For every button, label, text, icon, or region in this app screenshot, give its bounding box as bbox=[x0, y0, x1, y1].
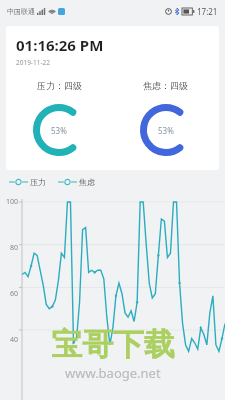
staticText: 2019-11-22 bbox=[16, 58, 50, 67]
staticText: 17:21 bbox=[197, 6, 218, 17]
staticText: 中国联通 bbox=[7, 7, 35, 16]
button[interactable]: 焦虑：四级 bbox=[112, 80, 219, 156]
staticText: 40 bbox=[10, 335, 19, 345]
staticText: 焦虑：四级 bbox=[143, 80, 188, 91]
staticText: 01:16:26 PM bbox=[16, 35, 104, 55]
staticText: 压力 bbox=[30, 177, 46, 187]
button[interactable]: 压力 bbox=[9, 177, 46, 187]
staticText: 53% bbox=[158, 125, 174, 136]
button[interactable]: 焦虑 bbox=[58, 177, 95, 187]
button[interactable]: 压力：四级 bbox=[6, 80, 112, 156]
staticText: 80 bbox=[10, 243, 19, 253]
button[interactable]: 01:16:26 PM bbox=[6, 26, 219, 170]
staticText: 53% bbox=[51, 125, 67, 136]
staticText: 60 bbox=[10, 289, 19, 299]
staticText: 焦虑 bbox=[79, 177, 95, 187]
staticText: 宝哥下载 bbox=[51, 325, 175, 364]
staticText: www.baoge.net bbox=[65, 364, 161, 382]
other: 焦虑：四级 bbox=[140, 104, 192, 156]
staticText: 压力：四级 bbox=[37, 80, 82, 91]
other: 压力：四级 bbox=[33, 104, 85, 156]
staticText: 100 bbox=[6, 197, 19, 207]
